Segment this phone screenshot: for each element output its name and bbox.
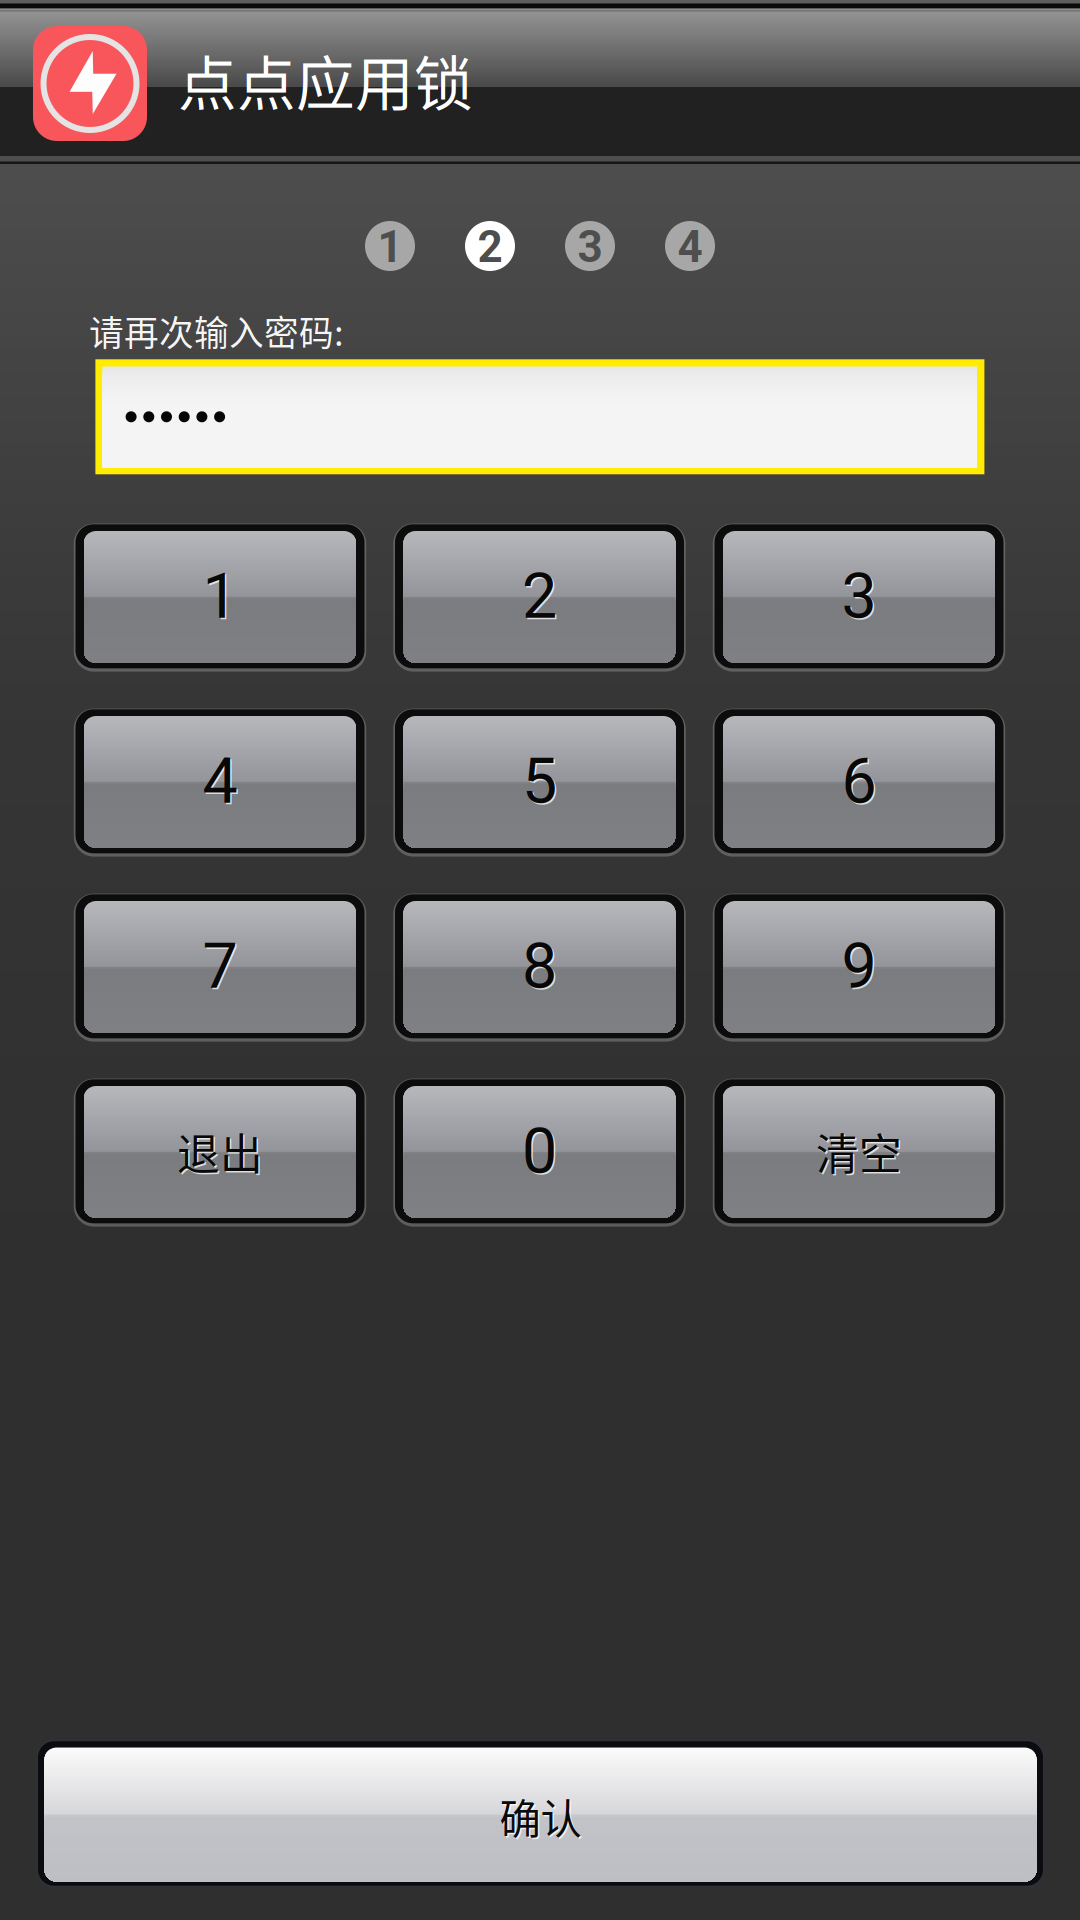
- button[interactable]: 2: [395, 524, 684, 668]
- staticText: 退出: [177, 1120, 263, 1182]
- button[interactable]: 8: [395, 894, 684, 1038]
- staticText: 7: [204, 931, 239, 1004]
- staticText: 8: [523, 931, 558, 1004]
- button[interactable]: 确认: [36, 1739, 1044, 1887]
- button[interactable]: 0: [395, 1079, 684, 1223]
- button[interactable]: 5: [395, 709, 684, 853]
- staticText: 2: [522, 560, 557, 633]
- staticText: 4: [204, 746, 239, 819]
- staticText: 9: [841, 930, 876, 1003]
- button[interactable]: 6: [714, 709, 1003, 853]
- staticText: 2: [523, 561, 558, 634]
- staticText: 2: [477, 221, 502, 273]
- staticText: 4: [202, 745, 237, 818]
- staticText: 5: [522, 745, 557, 818]
- staticText: 8: [522, 930, 557, 1003]
- staticText: 4: [677, 221, 702, 273]
- staticText: 3: [577, 221, 602, 273]
- button[interactable]: 退出: [75, 1079, 364, 1223]
- staticText: 7: [202, 930, 237, 1003]
- staticText: 6: [841, 745, 876, 818]
- button[interactable]: 3: [714, 524, 1003, 668]
- staticText: 6: [843, 746, 878, 819]
- button[interactable]: 1: [75, 524, 364, 668]
- button[interactable]: 7: [75, 894, 364, 1038]
- staticText: 1: [204, 561, 239, 634]
- staticText: 1: [202, 560, 237, 633]
- staticText: 请再次输入密码:: [89, 306, 344, 356]
- staticText: 5: [523, 746, 558, 819]
- staticText: 退出: [178, 1122, 264, 1184]
- staticText: 清空: [817, 1122, 903, 1184]
- staticText: 清空: [816, 1120, 902, 1182]
- staticText: 0: [523, 1116, 558, 1189]
- staticText: 确认: [499, 1786, 581, 1846]
- button[interactable]: 4: [75, 709, 364, 853]
- staticText: 确认: [501, 1788, 583, 1847]
- button[interactable]: 9: [714, 894, 1003, 1038]
- staticText: 3: [843, 561, 878, 634]
- staticText: 3: [841, 560, 876, 633]
- staticText: 0: [522, 1115, 557, 1188]
- staticText: 1: [377, 221, 402, 273]
- button[interactable]: 清空: [714, 1079, 1003, 1223]
- staticText: 点点应用锁: [178, 37, 473, 122]
- staticText: 9: [843, 931, 878, 1004]
